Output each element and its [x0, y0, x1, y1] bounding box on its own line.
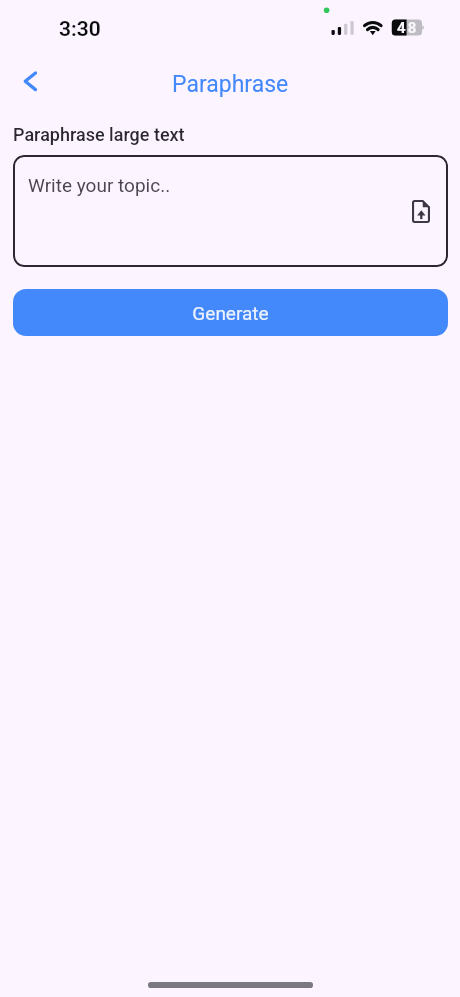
staticText: 3:30	[59, 17, 101, 42]
staticText: Paraphrase large text	[13, 124, 185, 145]
staticText: Paraphrase	[172, 71, 289, 98]
staticText: Write your topic..	[28, 174, 171, 196]
button[interactable]: Write your topic..	[13, 155, 448, 267]
button[interactable]: Back	[11, 62, 49, 100]
button[interactable]: Upload file	[403, 193, 439, 229]
staticText: 48	[397, 19, 419, 37]
staticText: Generate	[192, 302, 269, 324]
button[interactable]: Generate	[13, 289, 448, 336]
